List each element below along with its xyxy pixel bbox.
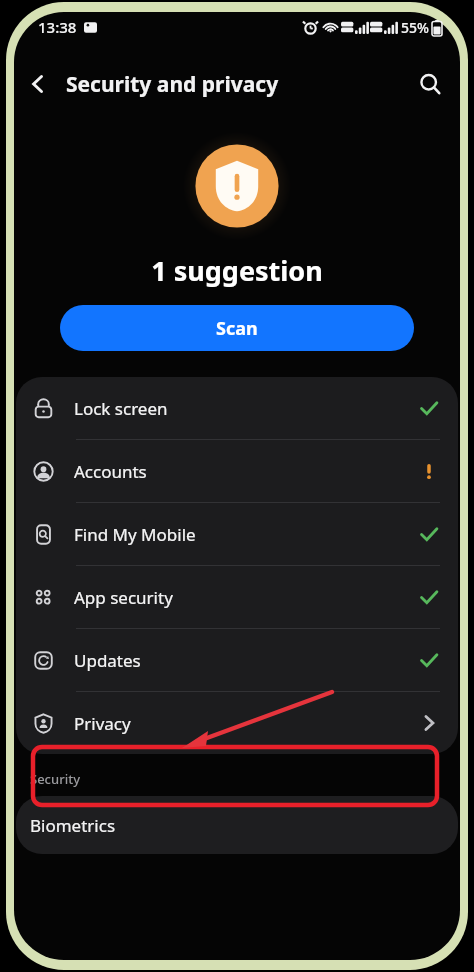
button[interactable]: Privacy — [16, 692, 458, 754]
button[interactable]: Accounts — [16, 440, 458, 502]
staticText: Security — [30, 770, 80, 788]
button[interactable]: Lock screen — [16, 377, 458, 439]
button[interactable]: Search — [408, 62, 452, 106]
button[interactable]: Back — [16, 62, 60, 106]
staticText: Find My Mobile — [74, 523, 418, 546]
staticText: Updates — [74, 649, 418, 672]
button[interactable]: Find My Mobile — [16, 503, 458, 565]
staticText: 1 suggestion — [151, 252, 323, 289]
staticText: 55% — [401, 18, 429, 37]
button[interactable]: App security — [16, 566, 458, 628]
staticText: Lock screen — [74, 397, 418, 420]
button[interactable]: Biometrics — [16, 796, 458, 854]
staticText: Security and privacy — [66, 70, 279, 99]
staticText: Privacy — [74, 712, 418, 735]
staticText: Accounts — [74, 460, 418, 483]
button[interactable]: Scan — [60, 305, 414, 351]
staticText: Scan — [216, 316, 258, 341]
button[interactable]: Updates — [16, 629, 458, 691]
staticText: Biometrics — [30, 814, 116, 837]
staticText: App security — [74, 586, 418, 609]
staticText: 13:38 — [38, 17, 77, 37]
